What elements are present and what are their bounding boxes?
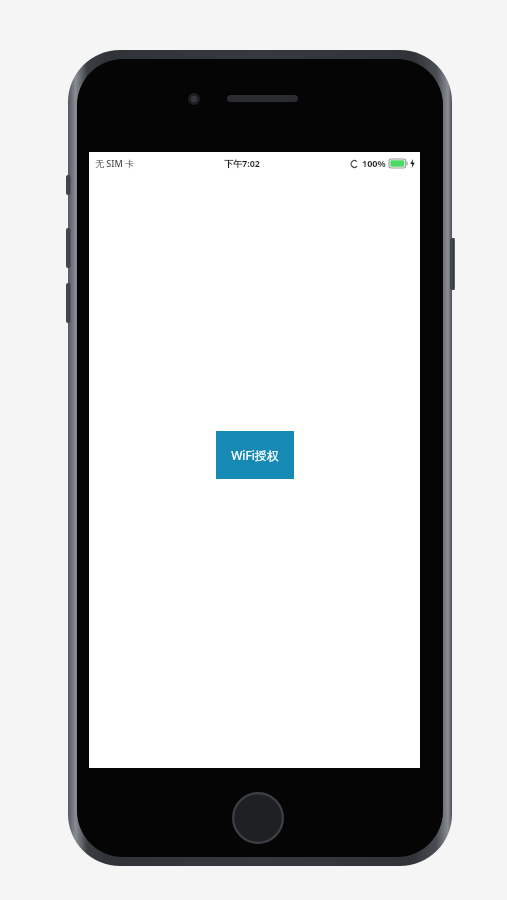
other: Home <box>232 792 284 844</box>
staticText: 无 SIM 卡 <box>95 157 135 169</box>
staticText: 下午7:02 <box>224 157 260 169</box>
button[interactable]: WiFi授权 <box>216 431 294 479</box>
staticText: WiFi授权 <box>231 447 279 463</box>
staticText: 100% <box>362 157 386 169</box>
